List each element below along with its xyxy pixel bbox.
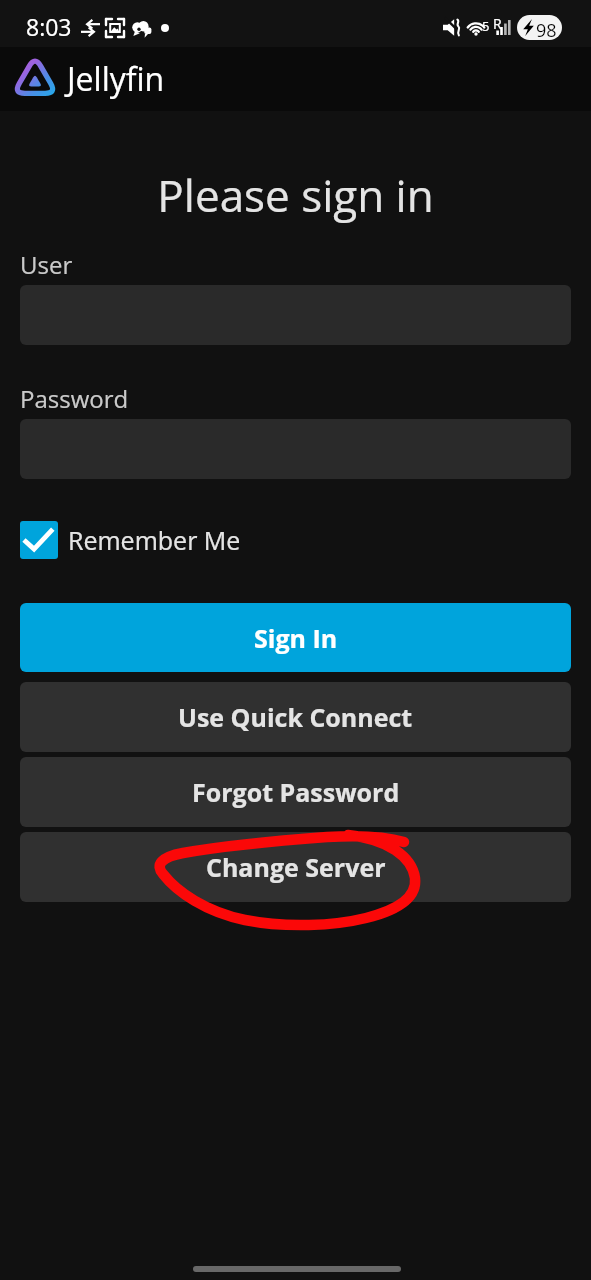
button[interactable]: Remember Me xyxy=(20,521,241,559)
staticText: Password xyxy=(20,382,129,415)
staticText: Please sign in xyxy=(0,165,591,225)
staticText: 8:03 xyxy=(26,11,72,42)
staticText: Sign In xyxy=(254,621,338,655)
button[interactable]: Use Quick Connect xyxy=(20,682,571,752)
staticText: Change Server xyxy=(206,850,386,884)
staticText: 5 xyxy=(482,17,490,35)
button[interactable]: Forgot Password xyxy=(20,757,571,827)
staticText: R xyxy=(493,14,502,33)
button[interactable]: Change Server xyxy=(20,832,571,902)
staticText: Forgot Password xyxy=(192,775,400,809)
staticText: 98 xyxy=(536,18,557,40)
button[interactable]: Sign In xyxy=(20,603,571,672)
staticText: Jellyfin xyxy=(67,57,165,101)
staticText: Remember Me xyxy=(68,523,241,557)
other: Annotation highlight xyxy=(0,0,591,1280)
staticText: Use Quick Connect xyxy=(178,700,413,734)
staticText: User xyxy=(20,248,73,281)
